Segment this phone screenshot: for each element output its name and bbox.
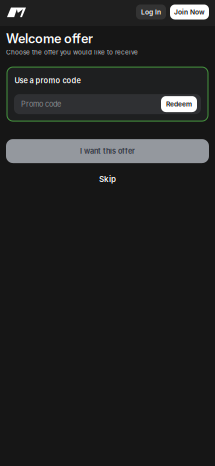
button[interactable]: Redeem (161, 96, 197, 112)
button[interactable]: Skip (0, 172, 215, 186)
button[interactable]: I want this offer (6, 139, 209, 163)
staticText: Promo code (21, 100, 61, 109)
staticText: Choose the offer you would like to recei… (6, 48, 138, 56)
staticText: Redeem (166, 100, 192, 108)
button[interactable]: Join Now (170, 4, 209, 19)
button[interactable]: Log In (136, 4, 166, 19)
staticText: I want this offer (80, 147, 135, 156)
staticText: Join Now (174, 8, 205, 16)
staticText: Use a promo code (14, 76, 80, 85)
staticText: Log In (141, 8, 161, 16)
staticText: Skip (99, 174, 116, 184)
staticText: Welcome offer (6, 31, 93, 46)
